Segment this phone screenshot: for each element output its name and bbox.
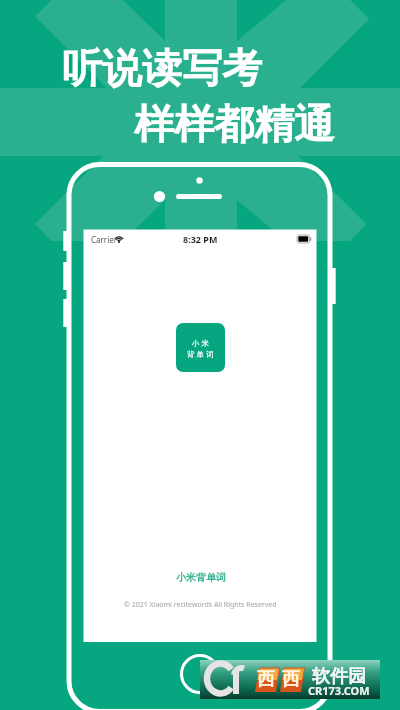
staticText: 小 米 bbox=[192, 338, 209, 348]
staticText: © 2021 Xiaomi recitewords All Rights Res… bbox=[124, 600, 277, 610]
staticText: 小米背单词 bbox=[176, 571, 226, 584]
staticText: 样样都精通 bbox=[134, 99, 334, 149]
staticText: 西 bbox=[257, 668, 275, 691]
staticText: 软件园 bbox=[312, 665, 366, 688]
staticText: 8:32 PM bbox=[183, 233, 218, 245]
staticText: 听说读写考 bbox=[62, 43, 262, 93]
staticText: Carrier bbox=[91, 234, 118, 245]
button[interactable]: 小 米 bbox=[176, 323, 225, 372]
staticText: CR173.COM bbox=[308, 683, 370, 698]
staticText: 背 单 词 bbox=[187, 349, 214, 359]
staticText: 西 bbox=[282, 668, 300, 691]
